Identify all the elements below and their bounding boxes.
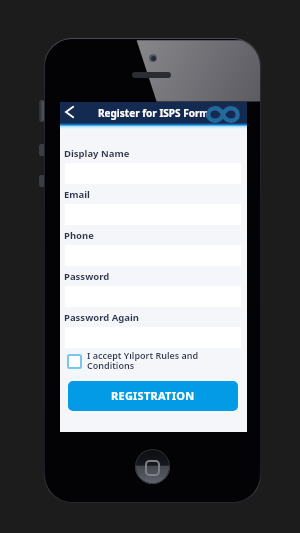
staticText: Phone — [64, 229, 94, 242]
staticText: Display Name — [64, 147, 130, 160]
button[interactable]: Back — [60, 102, 78, 122]
staticText: Password — [64, 270, 110, 283]
staticText: REGISTRATION — [111, 388, 195, 403]
staticText: I accept Yılport Rules and Conditions — [87, 349, 201, 371]
button[interactable]: REGISTRATION — [68, 381, 238, 411]
staticText: Password Again — [64, 311, 140, 324]
button[interactable]: Home — [135, 449, 170, 484]
staticText: Email — [64, 188, 90, 201]
staticText: Register for ISPS Form — [98, 106, 210, 120]
button[interactable]: I accept Yılport Rules and Conditions — [67, 352, 241, 374]
